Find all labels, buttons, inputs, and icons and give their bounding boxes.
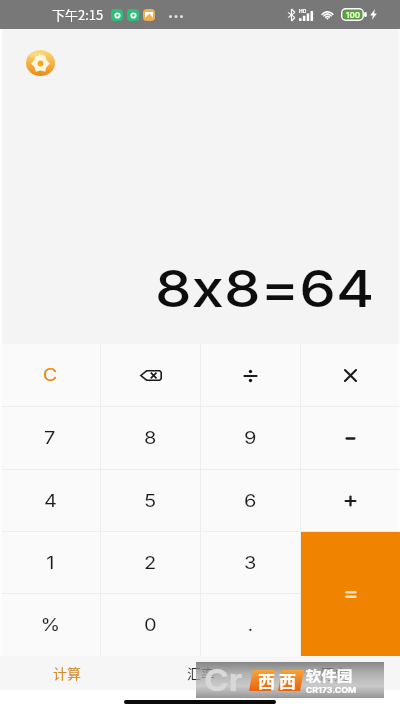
button[interactable] — [301, 594, 400, 656]
staticText: 西 — [279, 668, 296, 693]
staticText: 下午2:15 — [52, 5, 104, 24]
staticText: CR173.COM — [306, 685, 356, 695]
staticText: 3 — [244, 553, 257, 574]
staticText: C — [43, 365, 58, 386]
staticText: 0 — [144, 615, 157, 636]
staticText: 计算 — [53, 663, 81, 683]
staticText: 4 — [44, 491, 57, 512]
other: Equals — [346, 591, 356, 598]
other: Plus — [345, 496, 356, 506]
button[interactable]: 8 — [101, 407, 200, 470]
staticText: Cr — [204, 662, 243, 698]
staticText: 8x8=64 — [155, 258, 375, 320]
other: Divide — [244, 370, 257, 382]
button[interactable]: 9 — [201, 407, 300, 470]
button[interactable]: Equals — [301, 532, 400, 656]
button[interactable]: 6 — [201, 470, 300, 532]
other: Multiply — [344, 369, 357, 382]
button[interactable] — [301, 532, 400, 594]
other: Backspace — [140, 370, 162, 381]
button[interactable]: Minus — [301, 407, 400, 470]
button[interactable]: % — [0, 594, 100, 656]
staticText: 8 — [144, 428, 157, 449]
staticText: 西 — [258, 668, 275, 693]
staticText: 100 — [346, 10, 361, 20]
staticText: 9 — [244, 428, 257, 449]
staticText: % — [40, 615, 61, 636]
button[interactable]: 7 — [0, 407, 100, 470]
button[interactable]: 汇率 — [134, 656, 267, 690]
staticText: 1 — [46, 553, 55, 574]
button[interactable]: Settings — [26, 50, 55, 76]
button[interactable]: Backspace — [101, 344, 200, 407]
button[interactable]: 0 — [101, 594, 200, 656]
staticText: 历史 — [320, 663, 348, 683]
staticText: HD — [299, 8, 307, 14]
staticText: 软件园 — [305, 665, 352, 685]
button[interactable]: 2 — [101, 532, 200, 594]
button[interactable]: 5 — [101, 470, 200, 532]
button[interactable]: Plus — [301, 470, 400, 532]
staticText: 2 — [144, 553, 157, 574]
button[interactable]: Divide — [201, 344, 300, 407]
staticText: 7 — [44, 428, 56, 449]
staticText: 6 — [244, 491, 257, 512]
button[interactable]: 1 — [0, 532, 100, 594]
staticText: . — [248, 615, 253, 636]
button[interactable]: 3 — [201, 532, 300, 594]
button[interactable]: . — [201, 594, 300, 656]
button[interactable]: C — [0, 344, 100, 407]
button[interactable]: 计算 — [0, 656, 134, 690]
staticText: 汇率 — [187, 663, 215, 683]
button[interactable]: 历史 — [267, 656, 400, 690]
button[interactable]: Multiply — [301, 344, 400, 407]
other: Minus — [346, 437, 355, 440]
button[interactable]: 4 — [0, 470, 100, 532]
staticText: 5 — [144, 491, 157, 512]
